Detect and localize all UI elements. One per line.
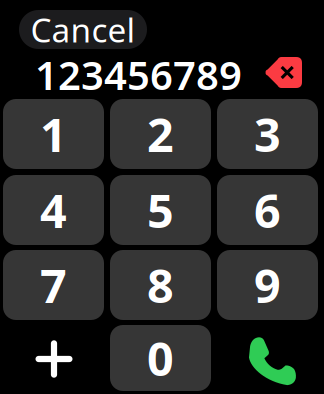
staticText: 9 — [254, 254, 281, 316]
button[interactable]: Cancel — [19, 10, 147, 49]
button[interactable]: 1 — [3, 99, 104, 169]
button[interactable]: 8 — [110, 250, 211, 320]
button[interactable]: 9 — [217, 250, 318, 320]
staticText: 8 — [147, 254, 174, 316]
staticText: Cancel — [30, 7, 135, 52]
staticText: 5 — [147, 179, 174, 241]
staticText: 123456789 — [35, 48, 242, 101]
staticText: 3 — [254, 103, 281, 165]
button[interactable]: 4 — [3, 175, 104, 245]
button[interactable]: Call — [217, 325, 318, 391]
button[interactable]: Plus — [3, 325, 104, 391]
staticText: 7 — [40, 254, 67, 316]
button[interactable]: 7 — [3, 250, 104, 320]
staticText: 1 — [40, 103, 67, 165]
staticText: 2 — [147, 103, 174, 165]
button[interactable]: 0 — [110, 325, 211, 391]
staticText: 0 — [147, 327, 174, 389]
staticText: 4 — [40, 179, 67, 241]
button[interactable]: 6 — [217, 175, 318, 245]
button[interactable]: Delete — [264, 57, 302, 88]
button[interactable]: 3 — [217, 99, 318, 169]
button[interactable]: 2 — [110, 99, 211, 169]
button[interactable]: 5 — [110, 175, 211, 245]
staticText: 6 — [254, 179, 281, 241]
